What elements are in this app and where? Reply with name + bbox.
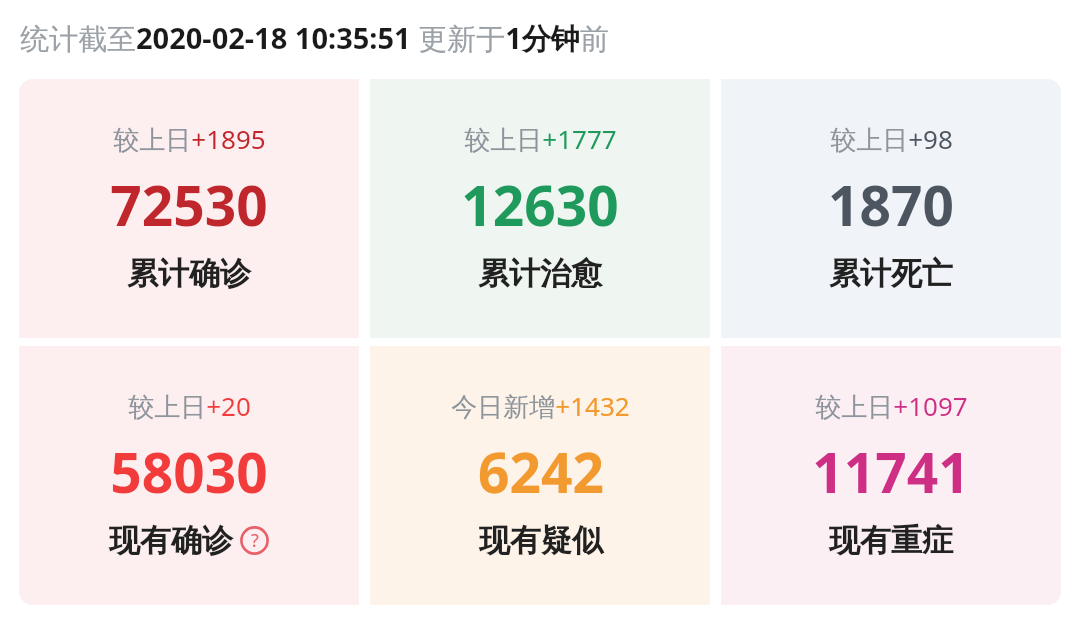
staticText: 统计截至2020-02-18 10:35:51 更新于1分钟前 [20, 18, 609, 58]
staticText: 今日新增+1432 [451, 388, 630, 424]
button[interactable]: 较上日+1097 [721, 346, 1061, 605]
staticText: 较上日+98 [830, 121, 953, 157]
staticText: 累计死亡 [829, 254, 953, 293]
staticText: 6242 [478, 434, 604, 509]
staticText: 累计确诊 [127, 254, 251, 293]
staticText: ? [251, 528, 259, 553]
staticText: 现有确诊 [109, 521, 233, 560]
staticText: 较上日+1895 [113, 121, 266, 157]
button[interactable]: 今日新增+1432 [370, 346, 710, 605]
button[interactable]: 较上日+1777 [370, 79, 710, 338]
staticText: 较上日+20 [128, 388, 251, 424]
staticText: 较上日+1777 [464, 121, 617, 157]
button[interactable]: 较上日+20 [19, 346, 359, 605]
button[interactable]: What is existing confirmed [240, 526, 269, 555]
staticText: 较上日+1097 [815, 388, 968, 424]
button[interactable]: 较上日+98 [721, 79, 1061, 338]
staticText: 12630 [461, 167, 619, 242]
staticText: 现有重症 [829, 521, 953, 560]
staticText: 72530 [110, 167, 268, 242]
staticText: 累计治愈 [478, 254, 602, 293]
staticText: 11741 [812, 434, 970, 509]
staticText: 1870 [828, 167, 954, 242]
button[interactable]: 较上日+1895 [19, 79, 359, 338]
staticText: 58030 [110, 434, 268, 509]
staticText: 现有疑似 [479, 521, 603, 560]
